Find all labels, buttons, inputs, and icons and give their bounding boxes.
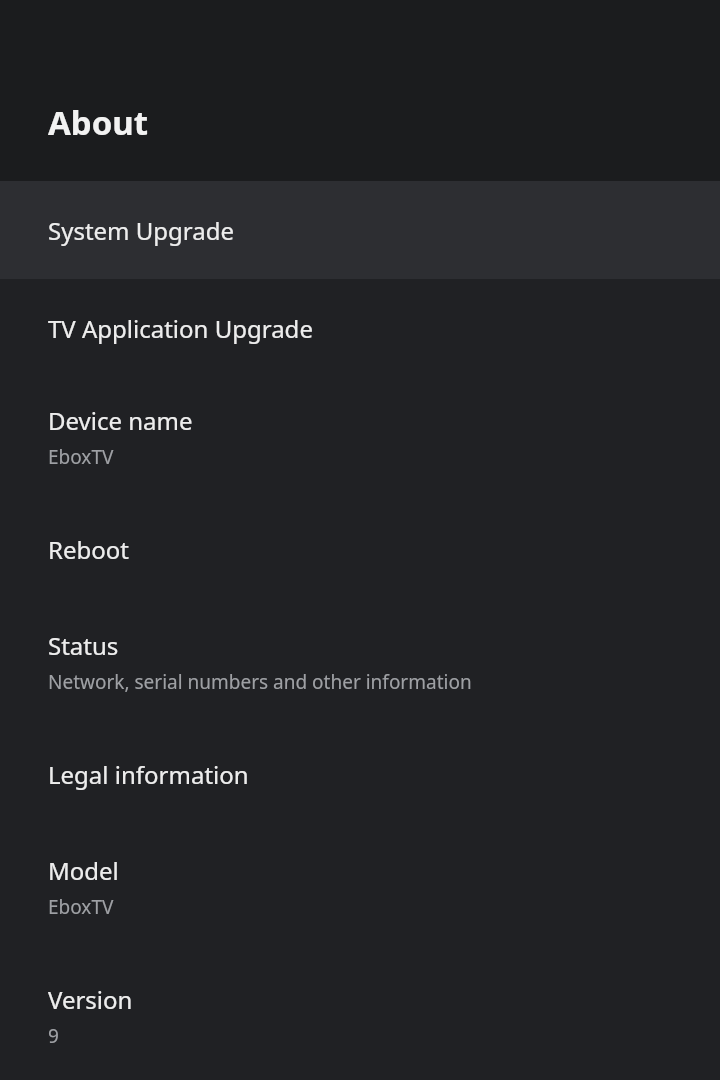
button[interactable]: Reboot [0,504,720,600]
staticText: Legal information [48,758,249,791]
staticText: EboxTV [48,444,114,470]
button[interactable]: Status [0,600,720,729]
staticText: EboxTV [48,894,114,920]
staticText: Status [48,629,119,662]
button[interactable]: System Upgrade [0,181,720,279]
staticText: Reboot [48,533,129,566]
staticText: Network, serial numbers and other inform… [48,669,472,695]
button[interactable]: Model [0,825,720,954]
button[interactable]: Legal information [0,729,720,825]
staticText: System Upgrade [48,214,235,247]
staticText: TV Application Upgrade [48,312,313,345]
staticText: Model [48,854,119,887]
staticText: 9 [48,1023,59,1049]
staticText: About [48,100,149,145]
button[interactable]: TV Application Upgrade [0,279,720,375]
staticText: Device name [48,404,193,437]
button[interactable]: Device name [0,375,720,504]
staticText: Version [48,983,133,1016]
button[interactable]: Version [0,954,720,1080]
